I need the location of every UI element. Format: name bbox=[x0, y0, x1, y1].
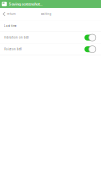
button[interactable]: Last time bbox=[0, 20, 101, 32]
staticText: Last time bbox=[4, 24, 16, 28]
staticText: waiting bbox=[40, 12, 51, 16]
button[interactable]: Vibration on bell bbox=[0, 32, 101, 43]
staticText: Voice on bell bbox=[4, 48, 22, 51]
staticText: Vibration on bell bbox=[4, 36, 29, 39]
staticText: return bbox=[7, 12, 16, 16]
staticText: Saving screenshot... bbox=[9, 1, 43, 6]
button[interactable]: return bbox=[0, 8, 19, 20]
button[interactable]: Voice on bell bbox=[0, 44, 101, 55]
